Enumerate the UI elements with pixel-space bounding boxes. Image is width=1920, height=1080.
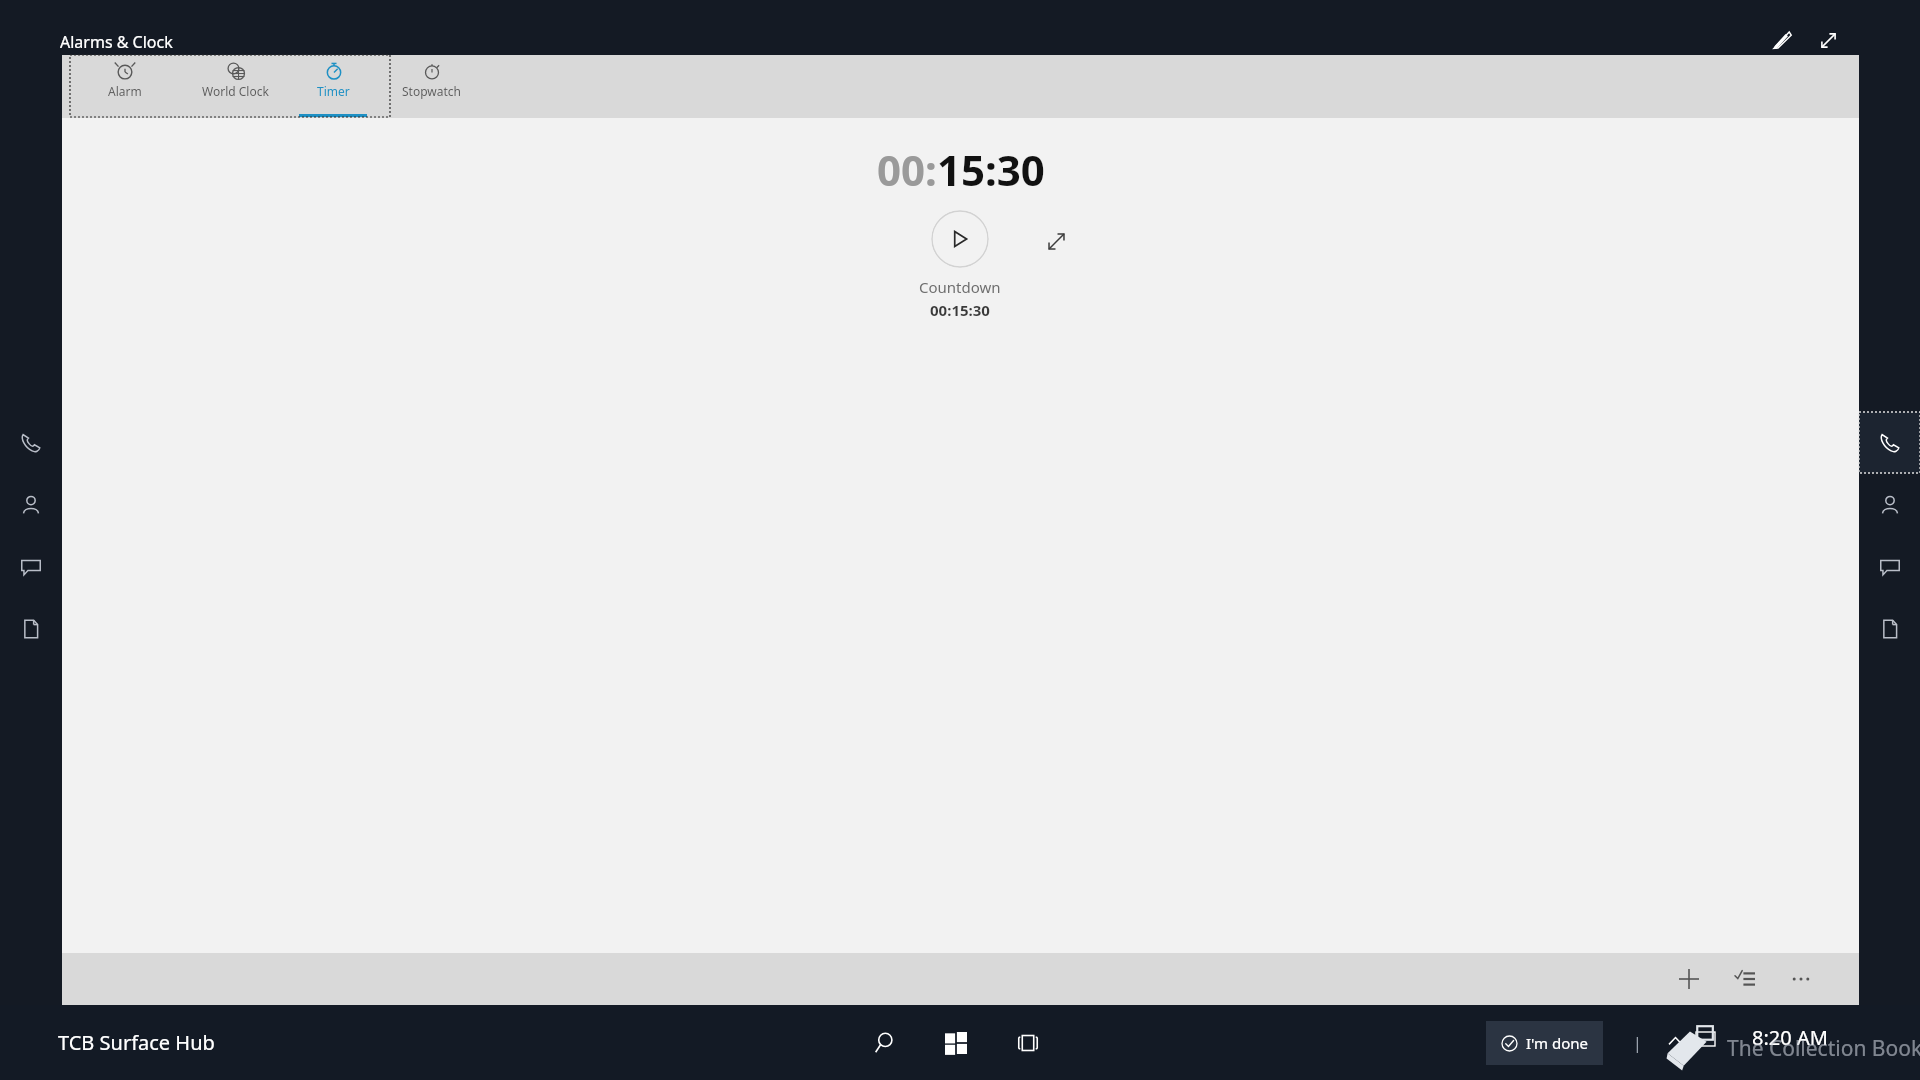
staticText: World Clock bbox=[202, 83, 269, 99]
button[interactable]: Task view bbox=[998, 1013, 1058, 1073]
button[interactable]: Messages bbox=[0, 536, 61, 597]
button[interactable]: Stopwatch bbox=[376, 55, 486, 118]
button[interactable]: Messages bbox=[1859, 536, 1920, 597]
button[interactable]: Files bbox=[1859, 598, 1920, 659]
button[interactable]: Timer bbox=[290, 55, 376, 118]
button[interactable]: Show hidden icons bbox=[1660, 1026, 1690, 1056]
button[interactable]: Expand timer bbox=[1039, 224, 1073, 258]
button[interactable]: World Clock bbox=[180, 55, 290, 118]
staticText: TCB Surface Hub bbox=[58, 1029, 215, 1056]
staticText: 00: bbox=[877, 141, 937, 198]
button[interactable]: Start timer bbox=[931, 210, 989, 268]
button[interactable]: Full screen bbox=[1807, 19, 1849, 61]
staticText: Countdown bbox=[919, 277, 1001, 297]
staticText: | bbox=[1633, 1032, 1642, 1054]
staticText: 15:30 bbox=[937, 141, 1045, 198]
staticText: Timer bbox=[317, 83, 350, 99]
staticText: 8:20 AM bbox=[1752, 1024, 1828, 1051]
button[interactable]: Phone bbox=[0, 412, 61, 473]
staticText: Stopwatch bbox=[402, 83, 461, 99]
button[interactable]: Edit timers bbox=[1717, 953, 1773, 1005]
staticText: I'm done bbox=[1526, 1033, 1588, 1053]
button[interactable]: Search bbox=[854, 1013, 914, 1073]
button[interactable]: Files bbox=[0, 598, 61, 659]
button[interactable]: Contacts bbox=[1859, 474, 1920, 535]
button[interactable]: Start bbox=[926, 1013, 986, 1073]
button[interactable]: Contacts bbox=[0, 474, 61, 535]
button[interactable]: Alarm bbox=[70, 55, 180, 118]
button[interactable]: More options bbox=[1773, 953, 1829, 1005]
button[interactable]: Add timer bbox=[1661, 953, 1717, 1005]
staticText: Alarms & Clock bbox=[60, 31, 173, 53]
button[interactable]: Phone bbox=[1859, 412, 1920, 473]
staticText: The Collection Book bbox=[1727, 1034, 1920, 1063]
button[interactable]: Ink bbox=[1761, 19, 1803, 61]
button[interactable]: I'm done bbox=[1486, 1021, 1603, 1065]
staticText: Alarm bbox=[108, 83, 142, 99]
staticText: 00:15:30 bbox=[930, 300, 990, 320]
